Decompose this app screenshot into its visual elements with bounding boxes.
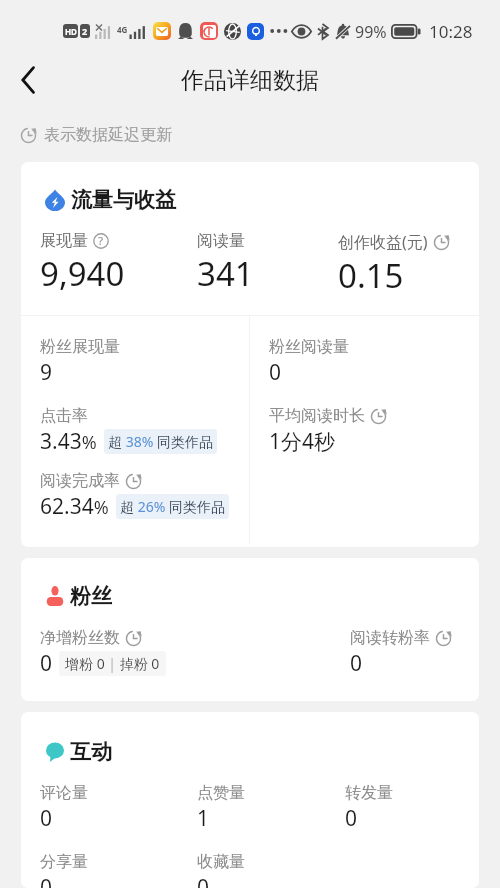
staticText: 评论量 <box>40 783 88 803</box>
staticText: ? <box>98 233 104 249</box>
staticText: 粉丝 <box>70 583 112 609</box>
staticText: 341 <box>197 251 254 296</box>
staticText: 2 <box>82 25 88 37</box>
staticText: 点赞量 <box>197 783 245 803</box>
staticText: 互动 <box>70 739 112 765</box>
staticText: 净增粉丝数 <box>40 628 120 648</box>
staticText: 收藏量 <box>197 852 245 872</box>
staticText: 粉丝阅读量 <box>269 337 349 357</box>
staticText: 平均阅读时长 <box>269 406 365 426</box>
staticText: 9 <box>40 358 53 387</box>
staticText: 阅读转粉率 <box>350 628 430 648</box>
staticText: 3.43% <box>40 427 97 456</box>
staticText: 10:28 <box>429 20 473 43</box>
staticText: 增粉 0 | 掉粉 0 <box>65 654 160 673</box>
staticText: HD <box>65 26 77 37</box>
staticText: 超 38% 同类作品 <box>108 432 213 451</box>
staticText: 62.34% <box>40 492 109 521</box>
staticText: 0 <box>40 873 53 888</box>
button[interactable]: Back <box>4 55 54 105</box>
staticText: 超 26% 同类作品 <box>120 497 225 516</box>
staticText: 0 <box>40 649 53 678</box>
staticText: 4G <box>117 24 128 35</box>
staticText: 点击率 <box>40 406 88 426</box>
staticText: 9,940 <box>40 251 125 296</box>
staticText: 阅读量 <box>197 231 245 251</box>
staticText: 阅读完成率 <box>40 471 120 491</box>
staticText: 表示数据延迟更新 <box>44 125 172 145</box>
staticText: 0.15 <box>338 253 404 298</box>
staticText: 转发量 <box>345 783 393 803</box>
staticText: 流量与收益 <box>71 187 176 213</box>
staticText: 展现量 <box>40 231 88 251</box>
staticText: 0 <box>345 804 358 833</box>
staticText: 0 <box>350 649 363 678</box>
staticText: 0 <box>197 873 210 888</box>
staticText: 0 <box>269 358 282 387</box>
staticText: 1分4秒 <box>269 427 336 456</box>
staticText: 粉丝展现量 <box>40 337 120 357</box>
staticText: 作品详细数据 <box>181 66 319 95</box>
staticText: 分享量 <box>40 852 88 872</box>
staticText: 0 <box>40 804 53 833</box>
staticText: 创作收益(元) <box>338 231 428 253</box>
staticText: 99% <box>355 21 387 43</box>
staticText: 1 <box>197 804 210 833</box>
